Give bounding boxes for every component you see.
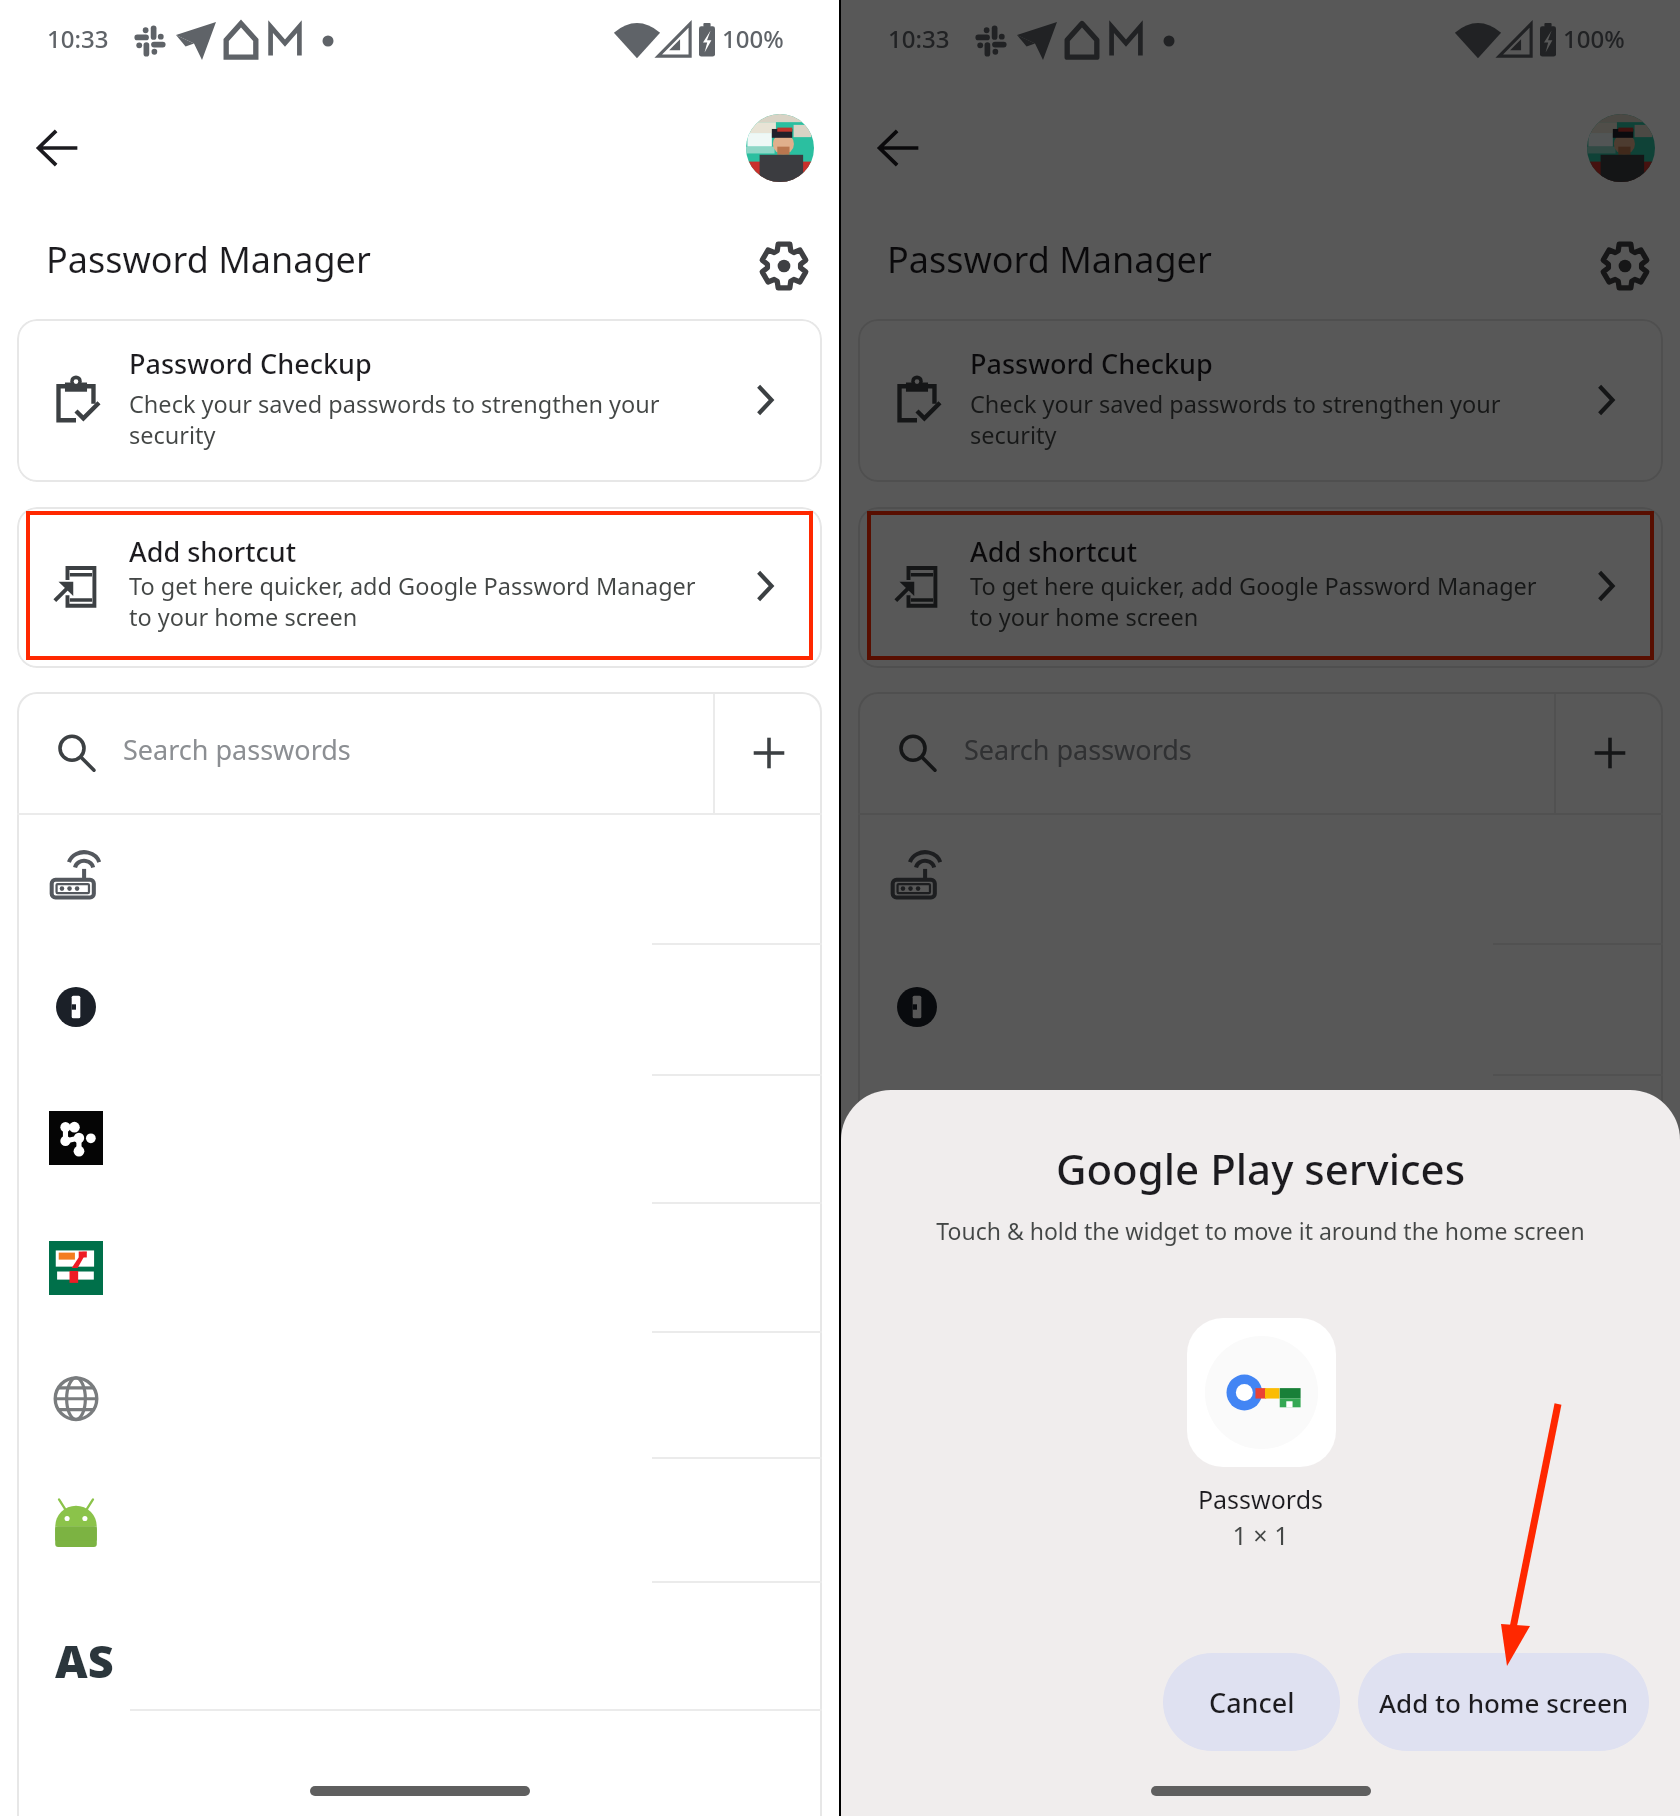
button[interactable]: Settings	[748, 230, 820, 302]
staticText: 10:33	[888, 22, 950, 55]
staticText: 1 × 1	[841, 1518, 1680, 1552]
staticText: Search passwords	[123, 731, 351, 768]
staticText: Add shortcut	[129, 533, 297, 570]
button[interactable]: Search passwords	[858, 692, 1554, 814]
button[interactable]: App saved password	[17, 1074, 822, 1202]
staticText: Touch & hold the widget to move it aroun…	[881, 1215, 1640, 1246]
button[interactable]: Android saved password	[17, 1456, 822, 1584]
button[interactable]: Settings	[1589, 230, 1661, 302]
button[interactable]: Search passwords	[17, 692, 713, 814]
staticText: Password Checkup	[129, 345, 372, 382]
button[interactable]: 1Password saved password	[858, 943, 1663, 1071]
button[interactable]: Add password	[715, 692, 822, 814]
button[interactable]: 7-Eleven saved password	[858, 1204, 1663, 1332]
button[interactable]: Password Checkup	[858, 319, 1663, 482]
button[interactable]: Router saved password	[17, 813, 822, 941]
staticText: Password Manager	[887, 235, 1212, 284]
button[interactable]: Android saved password	[858, 1456, 1663, 1584]
button[interactable]: Add password	[1556, 692, 1663, 814]
button[interactable]: Password Checkup	[17, 319, 822, 482]
staticText: Cancel	[1209, 1684, 1295, 1721]
button[interactable]: Add shortcut	[858, 507, 1663, 668]
staticText: To get here quicker, add Google Password…	[970, 570, 1548, 632]
button[interactable]: Add shortcut	[17, 507, 822, 668]
staticText: Password Checkup	[970, 345, 1213, 382]
button[interactable]: Website saved password	[17, 1335, 822, 1463]
staticText: 10:33	[47, 22, 109, 55]
button[interactable]: Passwords widget	[1187, 1318, 1336, 1467]
staticText: Password Manager	[46, 235, 371, 284]
staticText: Add shortcut	[970, 533, 1138, 570]
staticText: Search passwords	[964, 731, 1192, 768]
button[interactable]: Account	[1587, 114, 1655, 182]
button[interactable]: 7-Eleven saved password	[17, 1204, 822, 1332]
staticText: Check your saved passwords to strengthen…	[970, 388, 1515, 450]
staticText: Google Play services	[841, 1140, 1680, 1197]
staticText: Passwords	[841, 1482, 1680, 1516]
button[interactable]: App saved password	[858, 1074, 1663, 1202]
button[interactable]: Website saved password	[858, 1335, 1663, 1463]
staticText: AS	[55, 1630, 114, 1691]
staticText: Add to home screen	[1379, 1685, 1629, 1720]
button[interactable]: 1Password saved password	[17, 943, 822, 1071]
staticText: To get here quicker, add Google Password…	[129, 570, 707, 632]
staticText: 100%	[722, 22, 784, 55]
staticText: Check your saved passwords to strengthen…	[129, 388, 674, 450]
button[interactable]: Android Studio saved password	[858, 1588, 1663, 1716]
button[interactable]: Back	[863, 113, 933, 183]
button[interactable]: Account	[746, 114, 814, 182]
button[interactable]: Router saved password	[858, 813, 1663, 941]
button[interactable]: Add to home screen	[1358, 1653, 1649, 1751]
button[interactable]: Back	[22, 113, 92, 183]
staticText: 100%	[1563, 22, 1625, 55]
button[interactable]: Cancel	[1163, 1653, 1340, 1751]
button[interactable]: Android Studio saved password	[17, 1588, 822, 1716]
